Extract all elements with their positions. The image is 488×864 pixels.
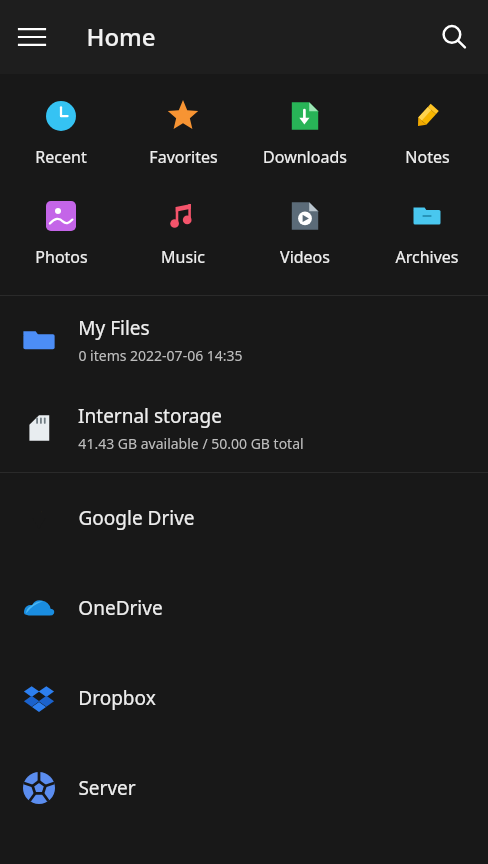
staticText: Videos [280, 246, 330, 268]
button[interactable]: Notes [366, 92, 488, 170]
button[interactable]: Videos [244, 192, 366, 270]
button[interactable]: Photos [0, 192, 122, 270]
button[interactable]: OneDrive [0, 563, 488, 653]
staticText: Dropbox [78, 685, 156, 711]
staticText: Favorites [149, 146, 218, 168]
button[interactable]: Music [122, 192, 244, 270]
button[interactable]: Downloads [244, 92, 366, 170]
staticText: 41.43 GB available / 50.00 GB total [78, 434, 304, 453]
staticText: OneDrive [78, 595, 163, 621]
staticText: Archives [395, 246, 459, 268]
staticText: Downloads [263, 146, 347, 168]
button[interactable]: Server [0, 743, 488, 833]
staticText: My Files [78, 315, 150, 341]
staticText: Google Drive [78, 505, 195, 531]
staticText: Server [78, 775, 136, 801]
staticText: Recent [35, 146, 87, 168]
button[interactable]: Open navigation menu [8, 13, 56, 61]
button[interactable]: Internal storage [0, 384, 488, 472]
button[interactable]: Archives [366, 192, 488, 270]
staticText: Music [161, 246, 205, 268]
staticText: Notes [405, 146, 450, 168]
staticText: Photos [35, 246, 88, 268]
button[interactable]: My Files [0, 296, 488, 384]
staticText: Home [86, 20, 156, 53]
button[interactable]: Dropbox [0, 653, 488, 743]
staticText: Internal storage [78, 403, 222, 429]
button[interactable]: Recent [0, 92, 122, 170]
button[interactable]: Google Drive [0, 473, 488, 563]
button[interactable]: Favorites [122, 92, 244, 170]
button[interactable]: Search [430, 13, 478, 61]
staticText: 0 items 2022-07-06 14:35 [78, 346, 243, 365]
